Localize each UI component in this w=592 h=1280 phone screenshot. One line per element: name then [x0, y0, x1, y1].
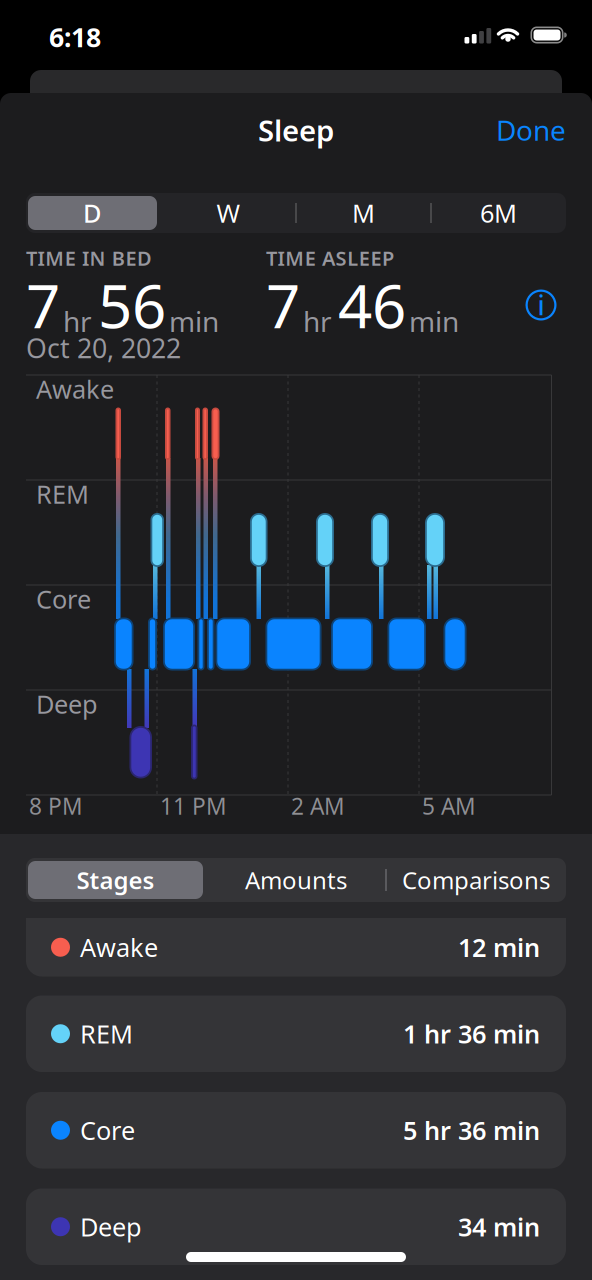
staticText: Sleep	[258, 110, 334, 149]
staticText: REM	[80, 1017, 133, 1050]
staticText: Awake	[80, 930, 158, 964]
staticText: Deep	[36, 687, 98, 721]
button[interactable]: Done	[0, 0, 592, 1280]
staticText: 12 min	[458, 930, 540, 964]
staticText: D	[83, 196, 102, 230]
staticText: 56	[98, 265, 166, 345]
staticText: 7	[266, 265, 300, 345]
staticText: 46	[338, 265, 406, 345]
staticText: Core	[36, 582, 91, 616]
staticText: Amounts	[245, 864, 347, 896]
button[interactable]: About Sleep	[0, 0, 592, 1280]
staticText: M	[352, 196, 375, 230]
staticText: 5 AM	[422, 791, 476, 821]
staticText: min	[169, 303, 219, 340]
button[interactable]: Stages	[0, 0, 592, 1280]
staticText: hr	[303, 303, 332, 340]
button[interactable]: W	[0, 0, 592, 1280]
button[interactable]: Awake	[0, 0, 592, 1280]
staticText: 1 hr 36 min	[403, 1017, 540, 1050]
button[interactable]: REM	[0, 0, 592, 1280]
staticText: Deep	[80, 1210, 142, 1243]
button[interactable]: D	[0, 0, 592, 1280]
staticText: Stages	[76, 864, 154, 896]
button[interactable]: Core	[0, 0, 592, 1280]
staticText: W	[216, 196, 240, 230]
button[interactable]: M	[0, 0, 592, 1280]
button[interactable]: Comparisons	[0, 0, 592, 1280]
staticText: 34 min	[458, 1210, 540, 1243]
staticText: Done	[496, 111, 566, 149]
button[interactable]: 6M	[0, 0, 592, 1280]
staticText: 5 hr 36 min	[403, 1113, 540, 1147]
staticText: min	[409, 303, 459, 340]
staticText: TIME IN BED	[26, 245, 152, 271]
staticText: 8 PM	[29, 791, 83, 821]
staticText: TIME ASLEEP	[266, 245, 394, 271]
staticText: REM	[36, 477, 89, 511]
staticText: hr	[63, 303, 92, 340]
staticText: Core	[80, 1113, 135, 1147]
staticText: 6M	[480, 196, 517, 230]
button[interactable]: Deep	[0, 0, 592, 1280]
staticText: 2 AM	[291, 791, 345, 821]
staticText: i	[537, 287, 544, 323]
staticText: 11 PM	[160, 791, 227, 821]
staticText: Oct 20, 2022	[26, 330, 181, 366]
staticText: Comparisons	[402, 864, 550, 896]
staticText: 6:18	[49, 19, 101, 55]
staticText: Awake	[36, 372, 114, 406]
staticText: 7	[26, 265, 60, 345]
button[interactable]: Amounts	[0, 0, 592, 1280]
